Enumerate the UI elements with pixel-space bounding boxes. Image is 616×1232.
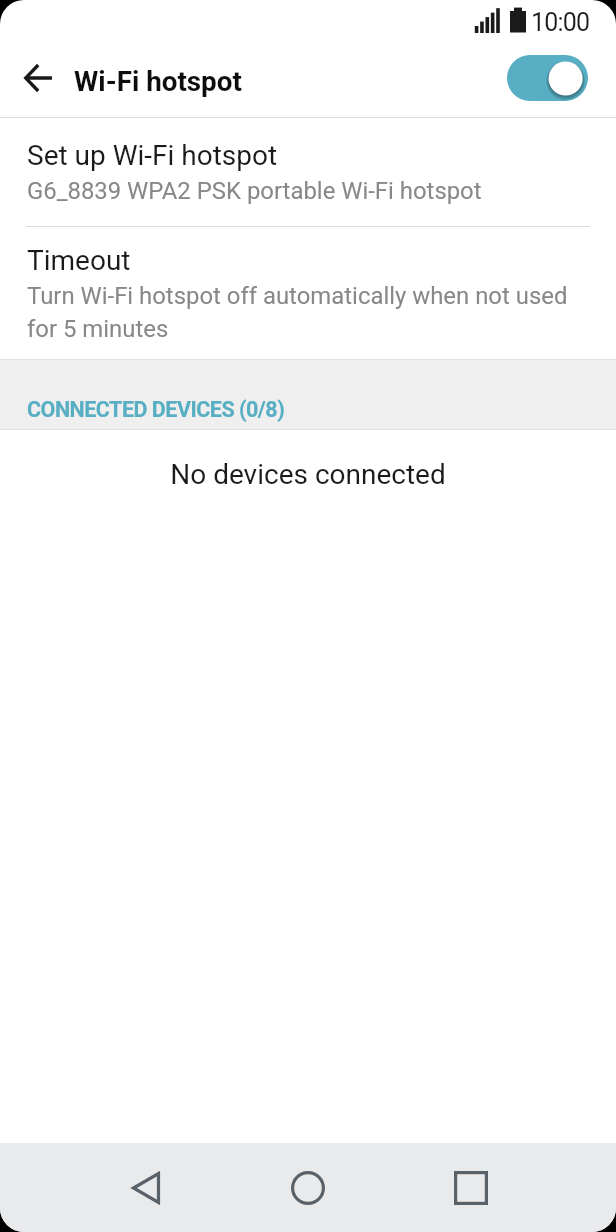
button[interactable]: Wi-Fi hotspot on [503, 51, 592, 105]
staticText: 10:00 [531, 8, 590, 37]
button[interactable]: Recent apps [431, 1148, 511, 1228]
button[interactable]: Back [10, 50, 66, 106]
button[interactable]: Set up Wi-Fi hotspot [0, 118, 616, 226]
staticText: Turn Wi-Fi hotspot off automatically whe… [27, 282, 580, 343]
button[interactable]: Back [106, 1148, 186, 1228]
staticText: G6_8839 WPA2 PSK portable Wi-Fi hotspot [27, 177, 482, 205]
button[interactable]: Home [268, 1148, 348, 1228]
staticText: Wi-Fi hotspot [74, 65, 242, 98]
button[interactable]: CONNECTED DEVICES (0/8) [0, 359, 616, 430]
button[interactable]: Timeout [0, 227, 616, 359]
staticText: No devices connected [170, 458, 446, 491]
staticText: Timeout [27, 244, 131, 277]
staticText: CONNECTED DEVICES (0/8) [27, 397, 285, 422]
staticText: Set up Wi-Fi hotspot [27, 139, 278, 172]
